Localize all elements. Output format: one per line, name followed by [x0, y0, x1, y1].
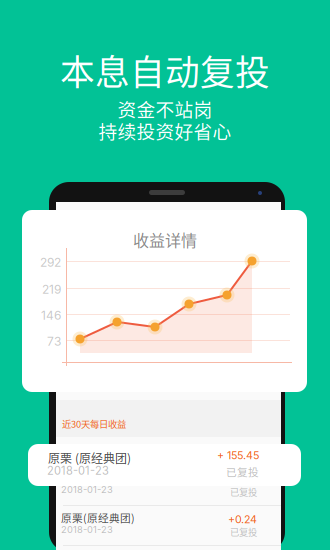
staticText: 219	[42, 282, 61, 296]
staticText: 近30天每日收益	[62, 417, 126, 430]
staticText: + 155.45	[217, 449, 259, 462]
staticText: 已复投	[230, 485, 257, 498]
staticText: +0.24	[228, 513, 257, 526]
button[interactable]: 原栗 (原经典团)	[28, 444, 301, 486]
button[interactable]: 原栗(原经典团)	[56, 466, 281, 506]
staticText: 已复投	[230, 525, 257, 538]
staticText: 本息自动复投	[60, 45, 270, 95]
staticText: 资金不站岗	[117, 95, 212, 122]
staticText: 2018-01-23	[61, 484, 113, 495]
staticText: + 155.45	[215, 473, 257, 486]
button[interactable]: 原栗(原经典团)	[56, 506, 281, 546]
staticText: 收益详情	[133, 228, 197, 251]
staticText: 2018-01-23	[61, 524, 113, 535]
staticText: 2018-01-23	[47, 464, 109, 477]
staticText: 已复投	[226, 464, 259, 479]
staticText: 146	[41, 308, 61, 322]
staticText: 原栗(原经典团)	[61, 510, 135, 525]
staticText: 73	[47, 334, 61, 348]
staticText: 原栗 (原经典团)	[48, 449, 131, 466]
staticText: 292	[40, 255, 61, 269]
staticText: 原栗(原经典团)	[61, 470, 135, 485]
staticText: 持续投资好省心	[98, 117, 231, 144]
